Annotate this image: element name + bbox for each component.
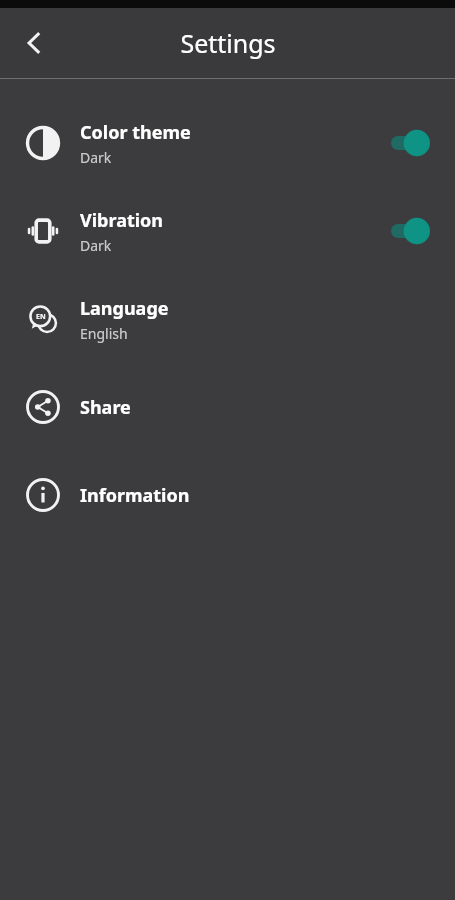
staticText: Dark xyxy=(80,236,112,255)
button[interactable]: Information xyxy=(0,451,455,539)
button[interactable]: Vibration xyxy=(0,187,455,275)
staticText: EN xyxy=(36,312,46,322)
button[interactable]: Color theme xyxy=(0,99,455,187)
staticText: English xyxy=(80,324,128,343)
button[interactable]: Toggle on xyxy=(391,216,433,246)
staticText: Settings xyxy=(180,26,276,60)
staticText: Language xyxy=(80,296,169,321)
staticText: Vibration xyxy=(80,208,164,233)
button[interactable]: EN xyxy=(0,275,455,363)
staticText: Information xyxy=(80,483,190,508)
button[interactable]: Share xyxy=(0,363,455,451)
staticText: Color theme xyxy=(80,120,191,145)
button[interactable]: Back xyxy=(8,17,60,69)
staticText: Share xyxy=(80,395,131,420)
button[interactable]: Toggle on xyxy=(391,128,433,158)
staticText: Dark xyxy=(80,148,112,167)
